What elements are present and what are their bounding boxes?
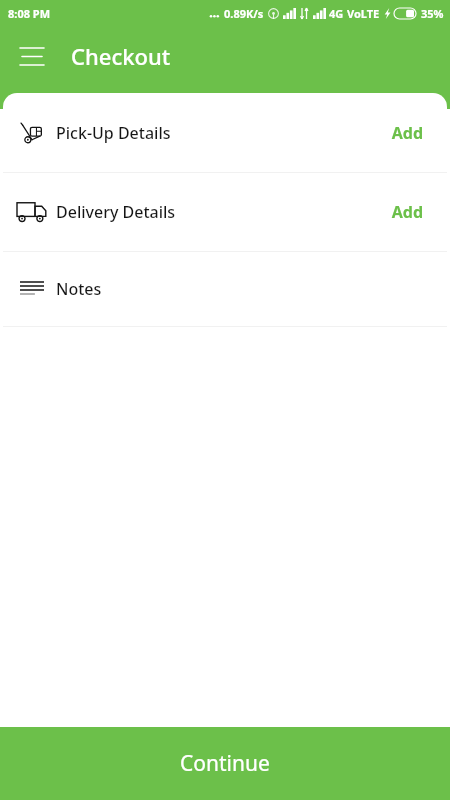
button[interactable]: Delivery Details <box>3 173 447 251</box>
staticText: Delivery Details <box>56 201 176 223</box>
staticText: 8:08 PM <box>8 6 51 21</box>
staticText: Add <box>391 122 423 144</box>
staticText: VoLTE <box>347 6 380 21</box>
staticText: 0.89K/s <box>224 6 264 21</box>
button[interactable]: Notes <box>3 252 447 326</box>
staticText: Checkout <box>71 41 171 71</box>
button[interactable]: Continue <box>0 727 450 800</box>
staticText: Add <box>391 201 423 223</box>
staticText: Pick-Up Details <box>56 122 171 144</box>
button[interactable]: Pick-Up Details <box>3 93 447 172</box>
staticText: 35% <box>421 6 444 21</box>
staticText: 4G <box>329 6 344 21</box>
staticText: Continue <box>180 749 270 778</box>
staticText: Notes <box>56 278 102 300</box>
button[interactable]: Open navigation menu <box>12 36 52 76</box>
